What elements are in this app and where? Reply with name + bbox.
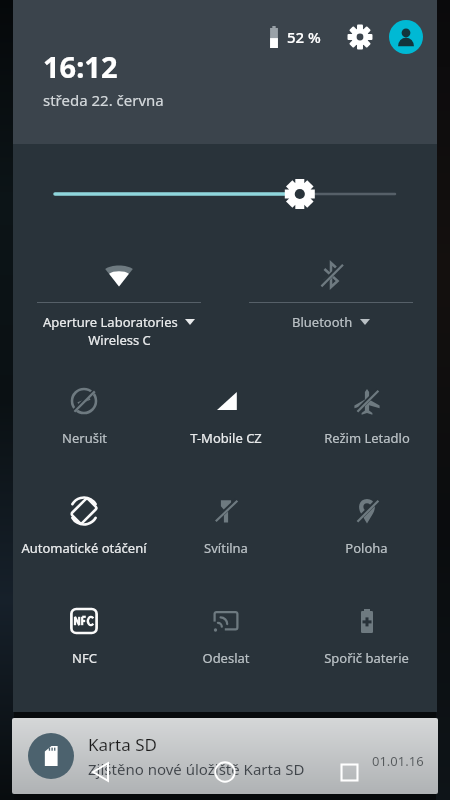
staticText: 16:12 [43, 47, 118, 86]
button[interactable]: Back [84, 755, 118, 789]
button[interactable]: Odeslat [155, 588, 296, 698]
button[interactable]: Svítilna [155, 478, 296, 588]
button[interactable]: Bluetooth [225, 244, 437, 362]
staticText: Karta SD [88, 733, 157, 756]
button[interactable]: T-Mobile CZ [155, 368, 296, 478]
button[interactable]: NFC [13, 588, 155, 698]
staticText: Režim Letadlo [324, 429, 410, 447]
staticText: Wireless C [88, 331, 151, 349]
button[interactable]: Nerušit [13, 368, 155, 478]
button[interactable]: Brightness [13, 144, 437, 244]
button[interactable]: Settings [343, 20, 377, 54]
staticText: Automatické otáčení [21, 539, 147, 557]
button[interactable]: Režim Letadlo [296, 368, 437, 478]
staticText: Zjištěno nové úložiště Karta SD [88, 759, 305, 779]
staticText: Odeslat [202, 649, 250, 667]
staticText: středa 22. června [43, 90, 164, 110]
button[interactable]: Spořič baterie [296, 588, 437, 698]
staticText: Svítilna [204, 539, 248, 557]
staticText: 01.01.16 [372, 752, 424, 770]
staticText: Spořič baterie [324, 649, 409, 667]
button[interactable]: Aperture Laboratories [13, 244, 225, 362]
staticText: T-Mobile CZ [190, 429, 262, 447]
button[interactable]: Poloha [296, 478, 437, 588]
staticText: Nerušit [62, 429, 107, 447]
staticText: Bluetooth [292, 313, 353, 331]
button[interactable]: Automatické otáčení [13, 478, 155, 588]
staticText: 52 % [287, 27, 321, 47]
staticText: NFC [72, 649, 97, 667]
button[interactable]: Karta SD [12, 718, 438, 794]
button[interactable]: User [389, 20, 423, 54]
staticText: Poloha [345, 539, 388, 557]
button[interactable]: Home [208, 755, 242, 789]
staticText: Aperture Laboratories [43, 313, 178, 331]
button[interactable]: Recents [332, 755, 366, 789]
